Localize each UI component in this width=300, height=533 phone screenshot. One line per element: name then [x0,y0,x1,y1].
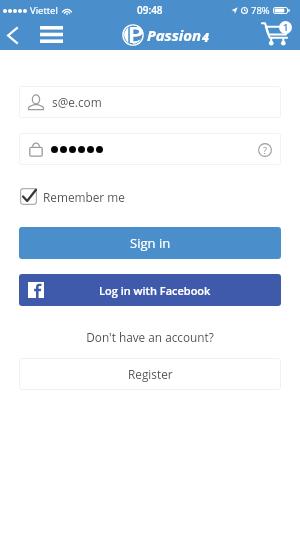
button[interactable]: Menu [34,21,68,49]
staticText: Viettel [30,4,58,17]
staticText: 1 [283,21,289,34]
staticText: 09:48 [137,3,163,17]
button[interactable]: Shopping cart [261,21,292,48]
staticText: Don't have an account? [0,329,300,345]
button[interactable]: Sign in [19,227,281,259]
button[interactable]: Log in with Facebook [19,274,281,306]
button[interactable]: Register [19,358,281,390]
button[interactable]: Remember me [20,188,125,205]
staticText: 78% [251,4,270,17]
button[interactable]: Help [19,133,281,165]
staticText: s@e.com [52,94,102,110]
staticText: 4 [202,29,209,45]
staticText: Register [128,366,173,382]
staticText: Sign in [130,234,171,252]
staticText: Log in with Facebook [99,283,211,298]
staticText: ? [263,144,267,156]
button[interactable]: Help [257,142,272,157]
staticText: Remember me [43,189,125,205]
button[interactable]: s@e.com [19,86,281,118]
staticText: Passion [147,25,202,45]
button[interactable]: Back [2,21,22,49]
